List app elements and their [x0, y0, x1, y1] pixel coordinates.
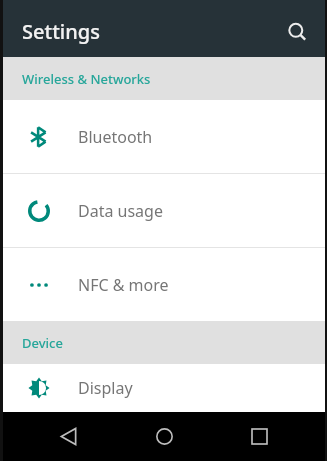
staticText: Data usage: [78, 200, 163, 222]
staticText: Display: [78, 377, 133, 399]
button[interactable]: Back: [41, 412, 95, 461]
button[interactable]: Search: [277, 12, 317, 52]
staticText: Wireless & Networks: [22, 70, 151, 88]
staticText: Bluetooth: [78, 126, 153, 148]
button[interactable]: Bluetooth: [0, 100, 327, 173]
button[interactable]: NFC & more: [0, 248, 327, 321]
button[interactable]: Home: [137, 412, 191, 461]
staticText: NFC & more: [78, 274, 169, 296]
staticText: Settings: [22, 18, 100, 45]
button[interactable]: Recent apps: [232, 412, 286, 461]
button[interactable]: Data usage: [0, 174, 327, 247]
button[interactable]: Display: [0, 364, 327, 412]
staticText: Device: [22, 334, 63, 352]
